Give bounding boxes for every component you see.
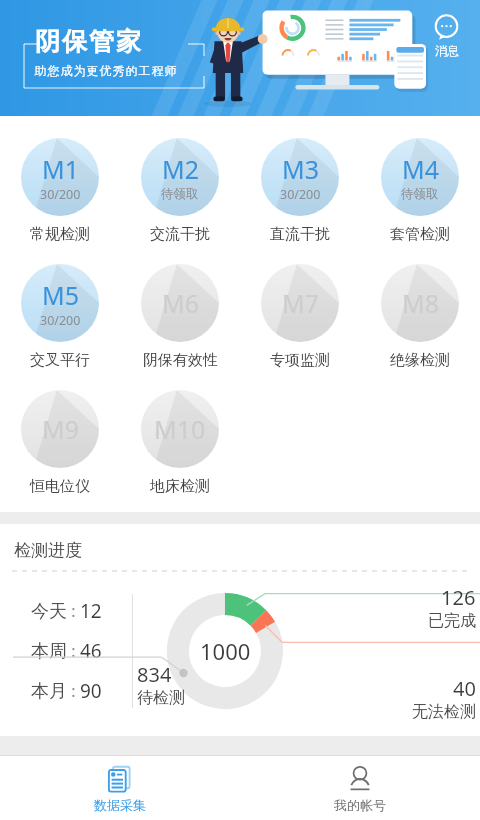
staticText: M3 <box>282 152 319 186</box>
button[interactable]: M2 <box>139 136 221 246</box>
staticText: : <box>67 600 80 622</box>
staticText: 834 <box>137 661 172 688</box>
staticText: M2 <box>162 152 199 186</box>
staticText: M5 <box>42 278 79 312</box>
staticText: 已完成 <box>428 611 476 631</box>
button[interactable]: M5 <box>19 262 101 372</box>
staticText: M7 <box>282 286 319 320</box>
button[interactable]: M10 <box>139 388 221 498</box>
staticText: 46 <box>80 638 102 664</box>
staticText: : <box>67 680 80 702</box>
staticText: 专项监测 <box>270 351 330 370</box>
staticText: 90 <box>80 678 102 704</box>
staticText: M8 <box>402 286 439 320</box>
staticText: M4 <box>402 152 439 186</box>
staticText: 常规检测 <box>30 225 90 244</box>
staticText: 30/200 <box>40 186 81 203</box>
staticText: 交流干扰 <box>150 225 210 244</box>
button[interactable]: M8 <box>379 262 461 372</box>
staticText: M9 <box>42 412 79 446</box>
staticText: 12 <box>80 598 102 624</box>
button[interactable]: M7 <box>259 262 341 372</box>
staticText: 40 <box>453 675 476 702</box>
staticText: 待领取 <box>401 186 439 202</box>
staticText: 我的帐号 <box>334 797 386 813</box>
button[interactable]: 数据采集 <box>0 756 240 820</box>
staticText: 今天 <box>31 600 67 623</box>
button[interactable]: M4 <box>379 136 461 246</box>
button[interactable]: M1 <box>19 136 101 246</box>
staticText: 绝缘检测 <box>390 351 450 370</box>
staticText: 30/200 <box>40 312 81 329</box>
staticText: 126 <box>441 584 476 611</box>
staticText: 助您成为更优秀的工程师 <box>34 63 177 78</box>
staticText: 阴保有效性 <box>143 351 218 370</box>
staticText: 直流干扰 <box>270 225 330 244</box>
staticText: M6 <box>162 286 199 320</box>
button[interactable]: M9 <box>19 388 101 498</box>
staticText: 无法检测 <box>412 702 476 722</box>
staticText: M1 <box>42 152 79 186</box>
staticText: 阴保管家 <box>34 26 142 57</box>
staticText: 检测进度 <box>14 540 82 561</box>
staticText: 数据采集 <box>94 797 146 813</box>
staticText: 待领取 <box>161 186 199 202</box>
staticText: 消息 <box>435 43 459 58</box>
staticText: 待检测 <box>137 688 185 708</box>
staticText: 本周 <box>31 640 67 663</box>
button[interactable]: 我的帐号 <box>240 756 480 820</box>
staticText: 恒电位仪 <box>30 477 90 496</box>
button[interactable]: 消息 <box>427 10 466 62</box>
staticText: 套管检测 <box>390 225 450 244</box>
staticText: M10 <box>154 412 206 446</box>
button[interactable]: M3 <box>259 136 341 246</box>
staticText: 交叉平行 <box>30 351 90 370</box>
staticText: 地床检测 <box>150 477 210 496</box>
staticText: 30/200 <box>280 186 321 203</box>
button[interactable]: M6 <box>139 262 221 372</box>
staticText: 本月 <box>31 680 67 703</box>
staticText: : <box>67 640 80 662</box>
staticText: 1000 <box>200 636 251 666</box>
